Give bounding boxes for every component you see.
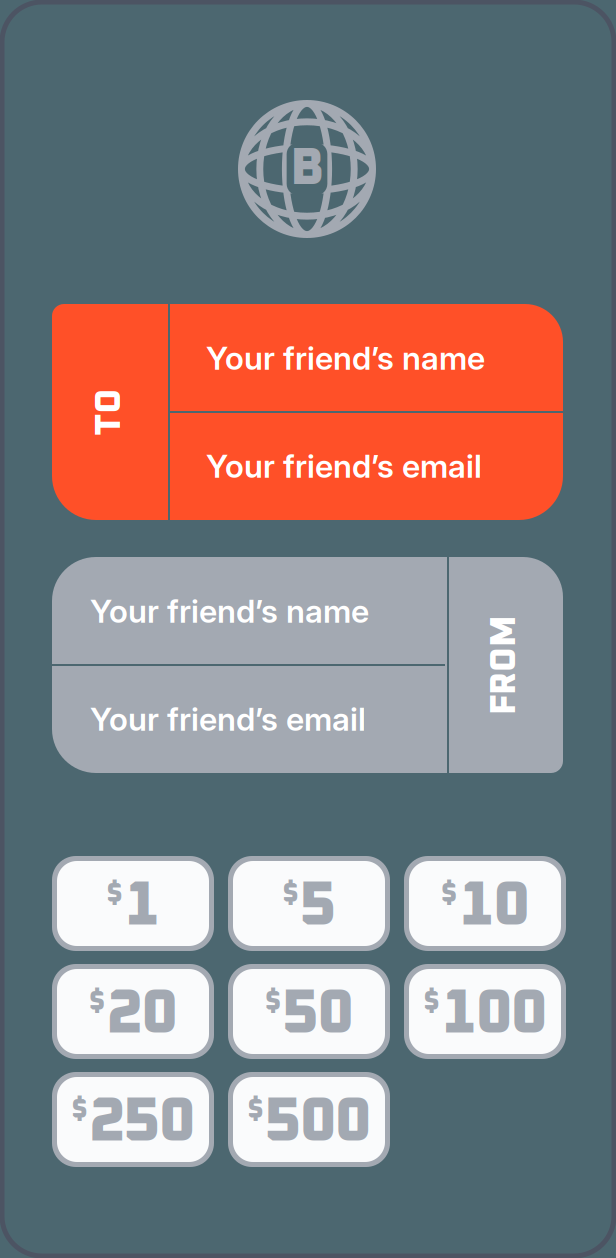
- staticText: Your friend’s name: [90, 592, 369, 630]
- staticText: Your friend’s email: [90, 700, 366, 738]
- staticText: FROM: [455, 648, 555, 682]
- staticText: $: [265, 987, 281, 1015]
- staticText: $: [89, 987, 105, 1015]
- button[interactable]: $: [52, 856, 214, 951]
- staticText: 250: [89, 1092, 194, 1153]
- button[interactable]: $: [52, 964, 214, 1059]
- button[interactable]: Your friend’s email: [206, 412, 561, 520]
- button[interactable]: Your friend’s email: [90, 665, 445, 773]
- staticText: B: [290, 143, 324, 195]
- button[interactable]: $: [228, 856, 390, 951]
- staticText: 50: [283, 984, 353, 1045]
- staticText: $: [247, 1095, 263, 1123]
- staticText: $: [71, 1095, 87, 1123]
- staticText: TO: [86, 395, 133, 429]
- staticText: $: [423, 987, 439, 1015]
- button[interactable]: $: [52, 1072, 214, 1167]
- staticText: 100: [441, 984, 546, 1045]
- staticText: $: [282, 879, 298, 907]
- staticText: $: [441, 879, 457, 907]
- button[interactable]: TO: [52, 304, 168, 520]
- staticText: $: [106, 879, 122, 907]
- staticText: Your friend’s name: [206, 339, 485, 377]
- staticText: 20: [107, 984, 177, 1045]
- button[interactable]: $: [404, 964, 566, 1059]
- button[interactable]: $: [228, 964, 390, 1059]
- staticText: 5: [300, 876, 335, 937]
- staticText: 1: [124, 876, 159, 937]
- button[interactable]: $: [404, 856, 566, 951]
- button[interactable]: $: [228, 1072, 390, 1167]
- staticText: Your friend’s email: [206, 447, 482, 485]
- button[interactable]: Your friend’s name: [206, 304, 561, 412]
- button[interactable]: FROM: [447, 557, 563, 773]
- button[interactable]: Your friend’s name: [90, 557, 445, 665]
- staticText: 500: [265, 1092, 370, 1153]
- staticText: 10: [459, 876, 529, 937]
